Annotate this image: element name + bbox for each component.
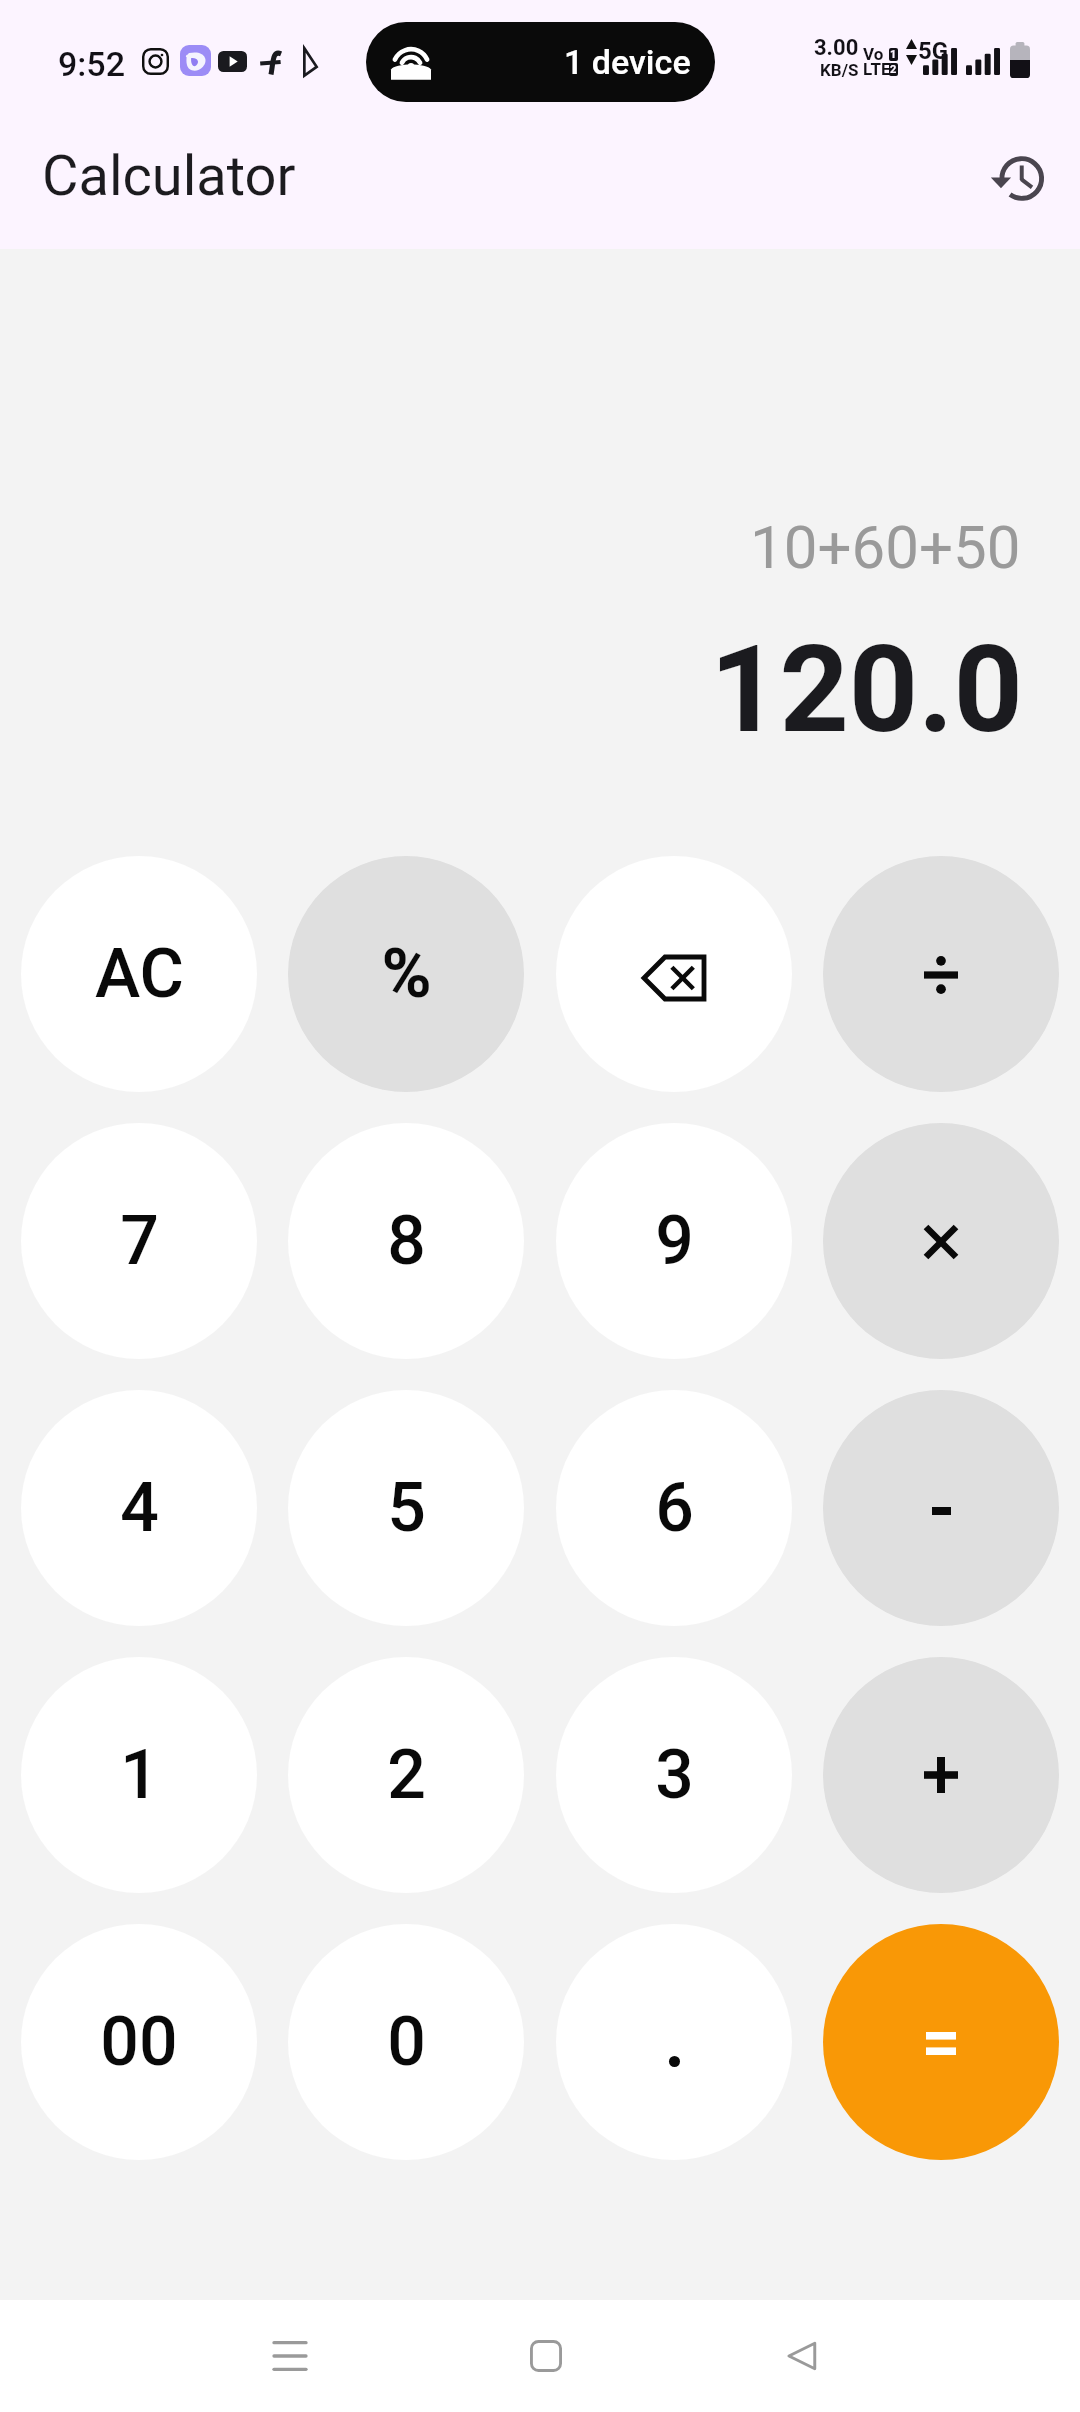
button[interactable]: 3 [556, 1657, 792, 1893]
staticText: KB/S [820, 60, 859, 80]
button[interactable]: 6 [556, 1390, 792, 1626]
staticText: 9 [655, 1201, 694, 1281]
button[interactable]: 00 [21, 1924, 257, 2160]
staticText: 5 [387, 1468, 426, 1548]
button[interactable]: Divide [823, 856, 1059, 1092]
staticText: 1 device [564, 42, 691, 82]
button[interactable]: 0 [288, 1924, 524, 2160]
button[interactable]: 1 [21, 1657, 257, 1893]
staticText: 2 [387, 1735, 426, 1815]
staticText: 10+60+50 [750, 512, 1021, 582]
staticText: 00 [100, 2002, 178, 2082]
button[interactable]: 7 [21, 1123, 257, 1359]
button[interactable]: Multiply [823, 1123, 1059, 1359]
staticText: 1 [890, 48, 897, 61]
staticText: 1 [120, 1735, 159, 1815]
button[interactable]: Back [746, 2300, 858, 2412]
staticText: 9:52 [58, 44, 125, 84]
button[interactable]: Recent apps [234, 2300, 346, 2412]
button[interactable]: 8 [288, 1123, 524, 1359]
button[interactable]: History [968, 129, 1066, 227]
staticText: Calculator [42, 143, 296, 209]
staticText: 4 [120, 1468, 159, 1548]
button[interactable]: 9 [556, 1123, 792, 1359]
staticText: 3 [655, 1735, 694, 1815]
button[interactable]: 2 [288, 1657, 524, 1893]
staticText: % [381, 934, 432, 1014]
button[interactable]: 5 [288, 1390, 524, 1626]
staticText: 7 [120, 1201, 159, 1281]
button[interactable]: AC [21, 856, 257, 1092]
button[interactable]: Cast, 1 device [366, 22, 715, 102]
button[interactable]: 4 [21, 1390, 257, 1626]
button[interactable]: % [288, 856, 524, 1092]
button[interactable]: Decimal point [556, 1924, 792, 2160]
button[interactable]: Delete [556, 856, 792, 1092]
staticText: 5G [918, 37, 949, 65]
button[interactable]: Home [490, 2300, 602, 2412]
button[interactable]: Equals [823, 1924, 1059, 2160]
staticText: AC [95, 934, 184, 1014]
staticText: 0 [387, 2002, 426, 2082]
staticText: LTE [863, 59, 891, 79]
staticText: Vo [863, 44, 884, 64]
button[interactable]: Minus [823, 1390, 1059, 1626]
staticText: 120.0 [710, 619, 1023, 761]
staticText: 2 [890, 63, 897, 76]
staticText: 6 [655, 1468, 694, 1548]
staticText: 3.00 [814, 35, 859, 61]
staticText: 8 [387, 1201, 426, 1281]
button[interactable]: Plus [823, 1657, 1059, 1893]
